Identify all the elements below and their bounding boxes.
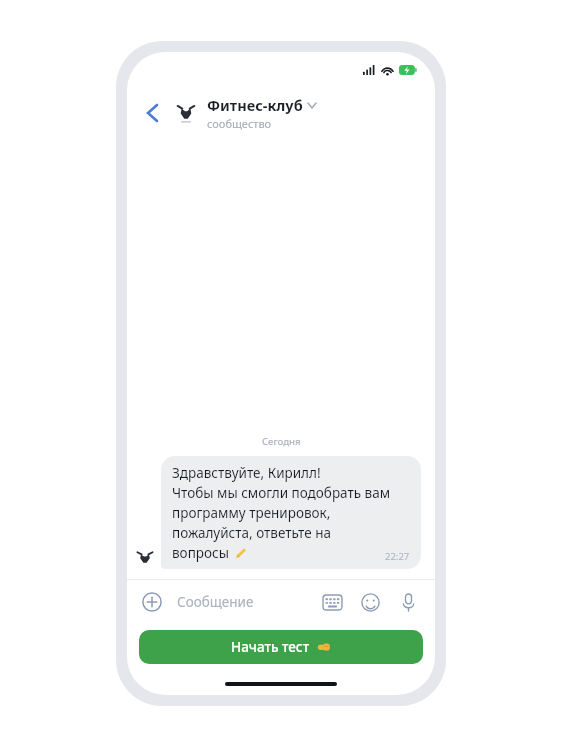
button[interactable]: Group avatar bbox=[173, 100, 199, 126]
staticText: Сообщение bbox=[177, 593, 254, 611]
staticText: Фитнес-клуб bbox=[207, 95, 303, 115]
staticText: Здравствуйте, Кирилл! bbox=[172, 464, 321, 482]
button[interactable]: Начать тест bbox=[139, 630, 423, 664]
staticText: Чтобы мы смогли подобрать вам bbox=[172, 484, 391, 502]
button[interactable]: Voice message bbox=[395, 589, 421, 615]
button[interactable]: Фитнес-клуб bbox=[207, 95, 421, 131]
staticText: сообщество bbox=[207, 116, 272, 131]
button[interactable]: Keyboard bbox=[319, 589, 345, 615]
staticText: пожалуйста, ответьте на bbox=[172, 524, 331, 542]
button[interactable]: Attach bbox=[139, 589, 165, 615]
staticText: 22:27 bbox=[385, 550, 410, 563]
staticText: Сегодня bbox=[262, 435, 301, 448]
button[interactable]: Emoji bbox=[357, 589, 383, 615]
staticText: программу тренировок, bbox=[172, 504, 331, 522]
staticText: Начать тест bbox=[231, 638, 310, 656]
button[interactable]: Back bbox=[137, 98, 167, 128]
button[interactable]: Здравствуйте, Кирилл! bbox=[161, 456, 421, 569]
button[interactable]: Сообщение bbox=[177, 593, 311, 611]
staticText: вопросы bbox=[172, 544, 229, 562]
